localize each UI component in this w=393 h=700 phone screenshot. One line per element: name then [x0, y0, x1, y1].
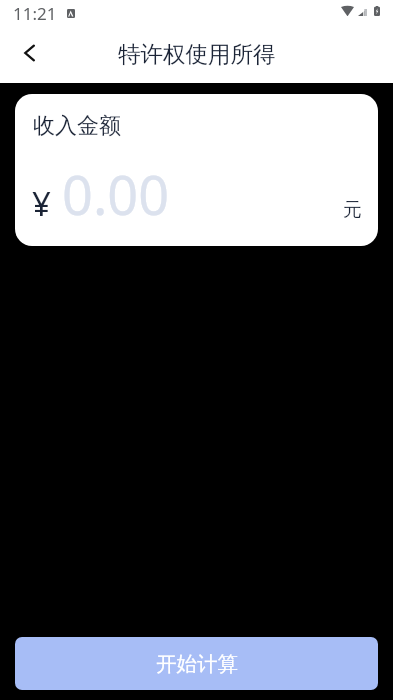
- button[interactable]: 收入金额: [15, 94, 378, 246]
- button[interactable]: 开始计算: [15, 637, 378, 690]
- button[interactable]: Back: [5, 33, 53, 81]
- staticText: 收入金额: [33, 112, 121, 140]
- staticText: 0.00: [62, 157, 170, 231]
- staticText: ¥: [32, 181, 51, 226]
- staticText: 元: [343, 198, 362, 221]
- staticText: 开始计算: [156, 651, 238, 677]
- staticText: 11:21: [13, 2, 57, 25]
- staticText: 特许权使用所得: [118, 40, 276, 68]
